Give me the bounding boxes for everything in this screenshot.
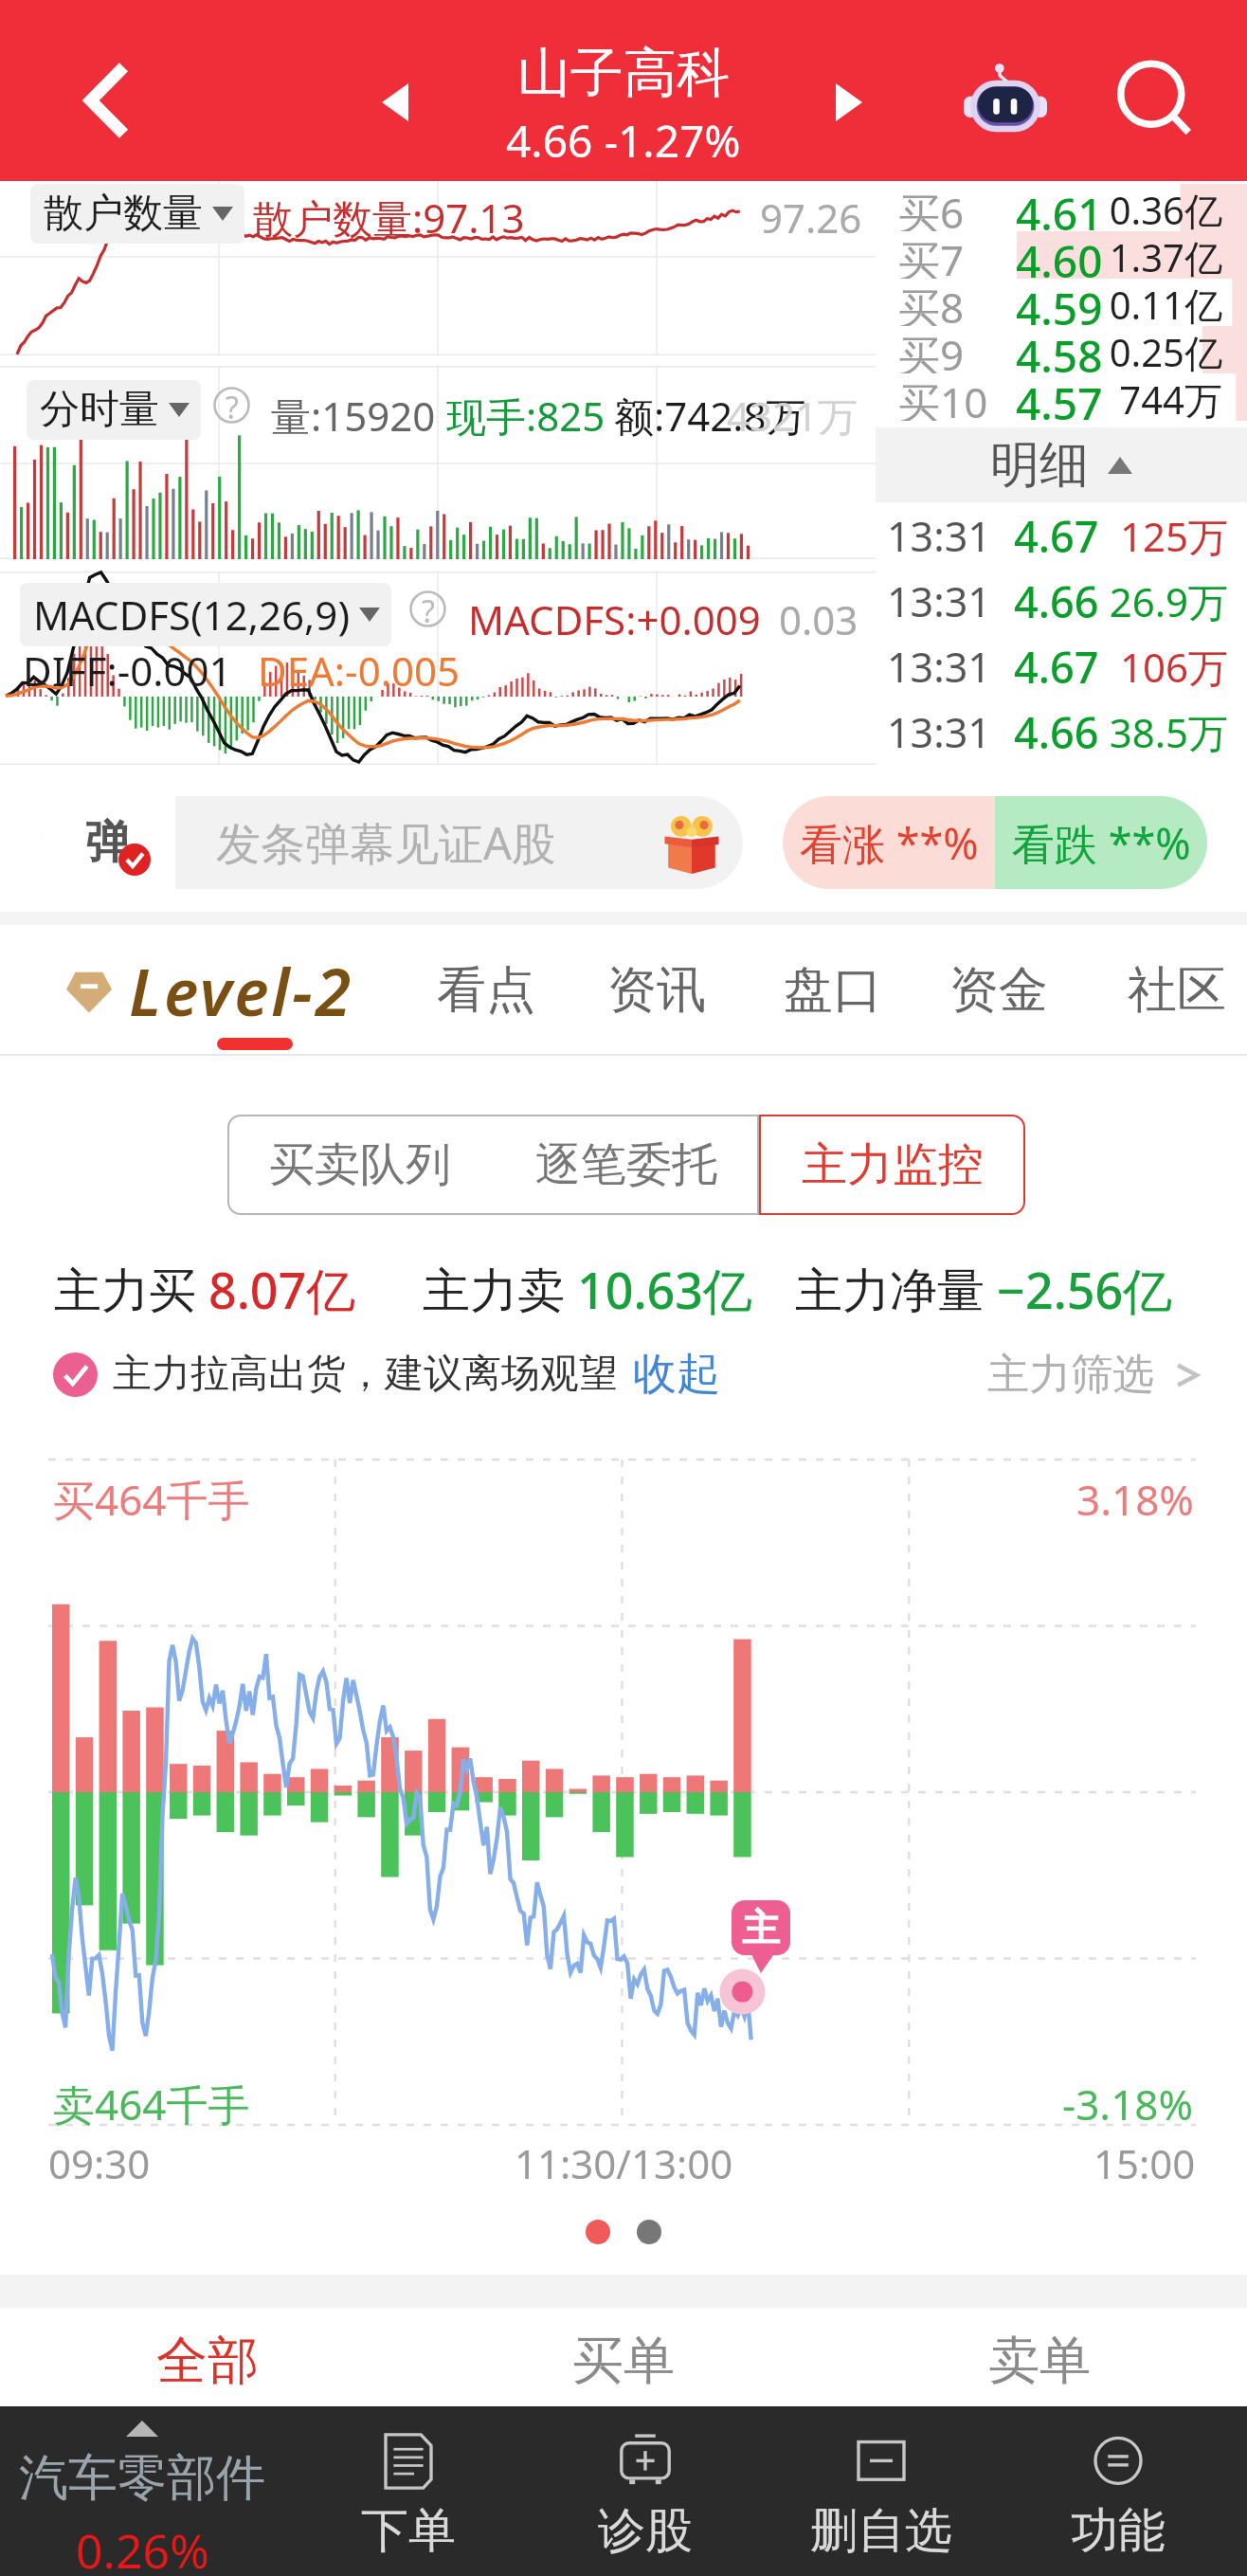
staticText: 明细	[990, 434, 1089, 497]
staticText: 4.67	[1014, 507, 1099, 565]
staticText: 106万	[1119, 640, 1228, 694]
button[interactable]: 汽车零部件	[0, 2406, 284, 2576]
button[interactable]: MACDFS(12,26,9)	[33, 588, 380, 642]
staticText: -3.18%	[1062, 2076, 1194, 2132]
staticText: DIFF:-0.001	[23, 644, 232, 698]
staticText: 收起	[633, 1347, 720, 1402]
button[interactable]: 逐笔委托	[493, 1115, 759, 1215]
button[interactable]: 盘口	[784, 959, 882, 1022]
staticText: 13:31	[887, 704, 991, 760]
button[interactable]: 删自选	[763, 2406, 1000, 2576]
staticText: 资讯	[607, 959, 706, 1022]
staticText: ?	[422, 590, 435, 627]
button[interactable]: 明细	[876, 427, 1247, 502]
button[interactable]: AI assistant	[944, 37, 1067, 160]
staticText: 744万	[1119, 373, 1222, 421]
button[interactable]: Next stock	[792, 45, 906, 159]
button[interactable]: 买10	[876, 373, 1247, 421]
button[interactable]: 下单	[290, 2406, 527, 2576]
staticText: 散户数量	[44, 189, 203, 239]
staticText: 发条弹幕见证A股	[216, 812, 557, 873]
staticText: 买9	[898, 326, 965, 373]
staticText: 15:00	[1093, 2136, 1196, 2190]
staticText: 38.5万	[1109, 705, 1228, 759]
button[interactable]: 13:31	[876, 569, 1247, 634]
button[interactable]: Back	[49, 44, 163, 157]
staticText: 125万	[1119, 509, 1228, 563]
staticText: 买7	[898, 231, 965, 279]
staticText: 资金	[949, 959, 1048, 1022]
staticText: 主力筛选	[987, 1349, 1154, 1401]
button[interactable]: 买单	[415, 2308, 831, 2406]
button[interactable]: Previous stock	[338, 45, 452, 159]
staticText: −2.56亿	[997, 1256, 1173, 1323]
staticText: 4.67	[1014, 638, 1099, 696]
staticText: 买单	[572, 2329, 675, 2393]
staticText: 10.63亿	[577, 1256, 753, 1323]
staticText: 4.66 -1.27%	[506, 111, 741, 171]
staticText: 盘口	[784, 959, 882, 1022]
button[interactable]: 收起	[633, 1347, 720, 1402]
staticText: 下单	[361, 2501, 456, 2561]
staticText: 买卖队列	[269, 1136, 451, 1193]
staticText: 现手:825	[446, 389, 605, 443]
staticText: 主力监控	[802, 1136, 984, 1193]
button[interactable]: 资讯	[607, 959, 706, 1022]
button[interactable]: 13:31	[876, 634, 1247, 699]
button[interactable]: 弹	[40, 796, 743, 889]
button[interactable]: 资金	[949, 959, 1048, 1022]
staticText: 主	[742, 1904, 780, 1951]
button[interactable]: 看跌 **%	[995, 796, 1207, 889]
button[interactable]: 诊股	[527, 2406, 764, 2576]
button[interactable]: 主力监控	[759, 1115, 1025, 1215]
staticText: 13:31	[887, 639, 991, 695]
staticText: 买8	[898, 279, 965, 326]
button[interactable]: 13:31	[876, 502, 1247, 569]
button[interactable]: 散户数量	[44, 189, 233, 239]
staticText: MACDFS:+0.009	[468, 592, 761, 646]
button[interactable]: 主力筛选	[987, 1349, 1200, 1401]
button[interactable]: 分时量	[40, 385, 190, 435]
staticText: 0.36亿	[1109, 184, 1222, 231]
button[interactable]: 买7	[876, 231, 1247, 279]
staticText: DEA:-0.005	[258, 644, 460, 698]
staticText: Level-2	[129, 947, 353, 1035]
staticText: MACDFS(12,26,9)	[33, 588, 350, 642]
staticText: 8.07亿	[208, 1256, 356, 1323]
staticText: 主力卖	[423, 1257, 577, 1321]
staticText: 13:31	[887, 508, 991, 564]
staticText: 1.37亿	[1109, 231, 1222, 279]
staticText: 主力净量	[795, 1257, 997, 1321]
staticText: 全部	[156, 2329, 259, 2393]
button[interactable]: 买6	[876, 184, 1247, 231]
staticText: 4.58	[1016, 326, 1103, 373]
staticText: 09:30	[48, 2136, 151, 2190]
staticText: 分时量	[40, 385, 159, 435]
button[interactable]: 看涨 **%	[783, 796, 995, 889]
button[interactable]: Search	[1093, 39, 1217, 162]
button[interactable]: 买9	[876, 326, 1247, 373]
staticText: 功能	[1071, 2501, 1166, 2561]
staticText: 卖464千手	[53, 2076, 250, 2132]
staticText: 4.59	[1016, 279, 1103, 326]
button[interactable]: 买8	[876, 279, 1247, 326]
staticText: 97.26	[760, 190, 862, 245]
staticText: 社区	[1128, 959, 1226, 1022]
staticText: ?	[226, 387, 239, 424]
staticText: 诊股	[598, 2501, 693, 2561]
staticText: 量:15920	[271, 389, 436, 443]
staticText: 4.60	[1016, 231, 1103, 279]
staticText: 0.25亿	[1109, 326, 1222, 373]
staticText: 看涨 **%	[800, 814, 979, 872]
button[interactable]: 13:31	[876, 699, 1247, 765]
button[interactable]: 全部	[0, 2308, 415, 2406]
button[interactable]: 功能	[1000, 2406, 1237, 2576]
button[interactable]: 买卖队列	[227, 1115, 493, 1215]
staticText: 看点	[437, 959, 535, 1022]
button[interactable]: 社区	[1128, 959, 1226, 1022]
staticText: 26.9万	[1109, 574, 1228, 628]
button[interactable]: 看点	[437, 959, 535, 1022]
staticText: 卖单	[988, 2329, 1091, 2393]
button[interactable]: 卖单	[831, 2308, 1247, 2406]
staticText: 4.66	[1014, 703, 1099, 761]
